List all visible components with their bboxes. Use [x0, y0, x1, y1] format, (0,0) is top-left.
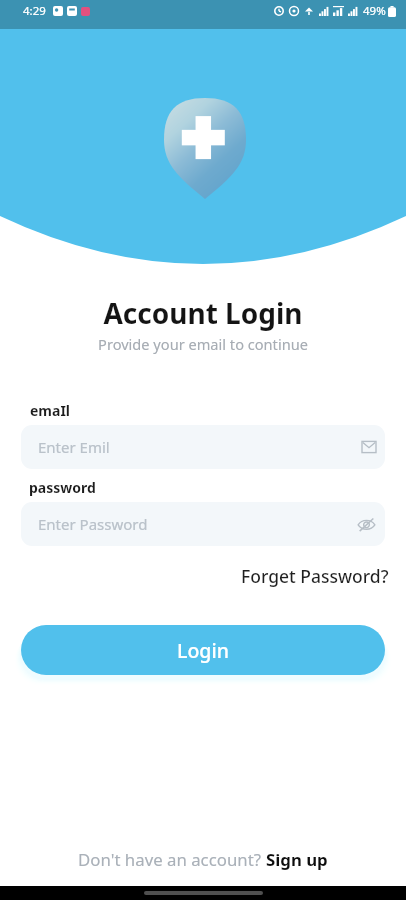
button[interactable]: Login — [21, 625, 385, 675]
button[interactable]: Forget Password? — [241, 564, 389, 588]
staticText: emaIl — [30, 401, 71, 420]
button[interactable]: Sign up — [266, 848, 328, 871]
staticText: Provide your email to continue — [0, 334, 406, 354]
staticText: Don't have an account? — [78, 848, 266, 871]
other: Email — [362, 440, 376, 454]
staticText: Account Login — [0, 294, 406, 332]
staticText: password — [29, 478, 96, 497]
staticText: 4:29 — [23, 3, 46, 19]
button[interactable]: Enter Password — [21, 502, 385, 546]
button[interactable]: Enter Emil — [21, 425, 385, 469]
staticText: Forget Password? — [241, 564, 389, 588]
staticText: Enter Password — [38, 514, 148, 534]
staticText: 49% — [363, 3, 386, 19]
staticText: Login — [177, 637, 229, 664]
staticText: Sign up — [266, 848, 328, 871]
staticText: Enter Emil — [38, 437, 110, 457]
other: Toggle password visibility — [357, 517, 376, 532]
